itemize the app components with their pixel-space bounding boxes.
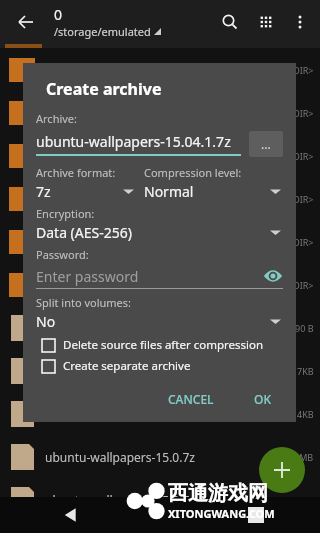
staticText: Create archive xyxy=(46,78,162,100)
button[interactable]: CANCEL xyxy=(156,386,226,412)
staticText: ... xyxy=(261,136,271,152)
button[interactable]: Delete source files after compression xyxy=(42,337,283,353)
staticText: ubuntu-wallpapers-15.0.7z xyxy=(45,492,195,508)
button[interactable]: folder-1 xyxy=(0,91,320,134)
button[interactable]: Create separate archive xyxy=(42,358,283,374)
button[interactable]: ubuntu-wallpapers-15.0.7z xyxy=(0,435,320,478)
button[interactable]: No xyxy=(36,312,283,331)
staticText: folder-0 xyxy=(45,62,90,78)
button[interactable]: folder-4 xyxy=(0,220,320,263)
button[interactable]: Back xyxy=(58,502,84,528)
staticText: ubuntu-wallpapers-15.0.7z xyxy=(45,320,195,336)
staticText: 4KB xyxy=(297,408,314,420)
staticText: folder-5 xyxy=(45,277,90,293)
staticText: CANCEL xyxy=(168,391,214,407)
button[interactable]: Add xyxy=(259,447,305,493)
staticText: 90 B xyxy=(295,322,314,334)
button[interactable]: Grid view xyxy=(248,4,284,40)
staticText: <DIR> xyxy=(288,107,314,119)
staticText: <DIR> xyxy=(288,279,314,291)
staticText: 7z xyxy=(36,182,51,201)
button[interactable]: folder-2 xyxy=(0,134,320,177)
staticText: folder-2 xyxy=(45,148,90,164)
staticText: Password: xyxy=(36,247,89,262)
staticText: /storage/emulated xyxy=(54,24,151,39)
staticText: folder-1 xyxy=(45,105,90,121)
staticText: 0 xyxy=(54,5,63,24)
button[interactable]: 7z xyxy=(36,182,136,201)
button[interactable]: ... xyxy=(249,131,283,157)
button[interactable]: folder-0 xyxy=(0,48,320,91)
button[interactable]: folder-3 xyxy=(0,177,320,220)
staticText: Create separate archive xyxy=(63,358,191,374)
button[interactable]: folder-5 xyxy=(0,263,320,306)
staticText: 7KB xyxy=(297,365,314,377)
staticText: <DIR> xyxy=(288,64,314,76)
button[interactable]: Enter password xyxy=(36,266,283,286)
staticText: Split into volumes: xyxy=(36,295,132,310)
staticText: Enter password xyxy=(36,267,139,286)
button[interactable]: Normal xyxy=(144,182,283,201)
button[interactable]: Recents xyxy=(248,507,264,523)
staticText: ubuntu-wallpapers-15.04.1.7z xyxy=(36,132,231,151)
staticText: folder-3 xyxy=(45,191,90,207)
staticText: OK xyxy=(254,391,271,407)
button[interactable]: ubuntu-wallpapers-15.0.7z xyxy=(0,349,320,392)
button[interactable]: Search xyxy=(212,4,248,40)
button[interactable]: Data (AES-256) xyxy=(36,223,283,242)
staticText: 1MB xyxy=(294,451,314,463)
button[interactable]: OK xyxy=(242,386,283,412)
staticText: <DIR> xyxy=(288,236,314,248)
staticText: 西通游戏网 xyxy=(168,481,268,506)
staticText: Archive format: xyxy=(36,165,116,180)
staticText: Normal xyxy=(144,182,194,201)
button[interactable]: ubuntu-wallpapers-15.0.7z xyxy=(0,306,320,349)
staticText: 18 B xyxy=(295,494,314,506)
staticText: Encryption: xyxy=(36,206,95,221)
staticText: <DIR> xyxy=(288,150,314,162)
button[interactable]: ubuntu-wallpapers-15.0.7z xyxy=(0,478,320,521)
staticText: No xyxy=(36,312,56,331)
staticText: <DIR> xyxy=(288,193,314,205)
button[interactable]: More options xyxy=(284,6,316,38)
staticText: Archive: xyxy=(36,111,78,126)
staticText: Delete source files after compression xyxy=(63,337,264,353)
staticText: folder-4 xyxy=(45,234,90,250)
button[interactable]: Back xyxy=(8,4,44,40)
other: Show password xyxy=(263,266,283,286)
staticText: Data (AES-256) xyxy=(36,223,132,242)
button[interactable]: ubuntu-wallpapers-15.0.7z xyxy=(0,392,320,435)
staticText: XITONGWANG.COM xyxy=(168,506,275,521)
staticText: ubuntu-wallpapers-15.0.7z xyxy=(45,363,195,379)
staticText: ubuntu-wallpapers-15.0.7z xyxy=(45,449,195,465)
staticText: Compression level: xyxy=(144,165,242,180)
